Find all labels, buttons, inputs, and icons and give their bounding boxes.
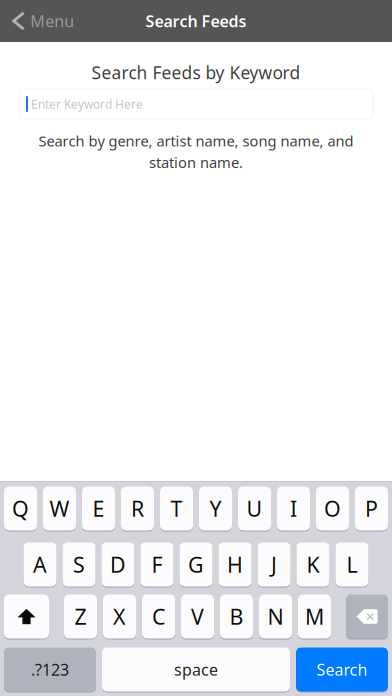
staticText: Q: [12, 494, 29, 523]
staticText: N: [267, 602, 283, 631]
staticText: C: [152, 602, 165, 631]
staticText: B: [229, 602, 243, 631]
button[interactable]: P: [355, 486, 388, 531]
staticText: F: [151, 550, 162, 579]
staticText: A: [33, 550, 47, 579]
staticText: L: [346, 550, 357, 579]
button[interactable]: Z: [64, 594, 97, 639]
staticText: M: [305, 602, 324, 631]
button[interactable]: C: [142, 594, 175, 639]
staticText: station name.: [149, 152, 243, 172]
staticText: V: [191, 602, 204, 631]
button[interactable]: U: [238, 486, 271, 531]
button[interactable]: Menu: [0, 0, 84, 42]
button[interactable]: Q: [4, 486, 37, 531]
button[interactable]: Search: [296, 647, 388, 692]
button[interactable]: W: [43, 486, 76, 531]
staticText: R: [131, 494, 144, 523]
button[interactable]: X: [103, 594, 136, 639]
button[interactable]: O: [316, 486, 349, 531]
button[interactable]: H: [218, 542, 251, 587]
staticText: H: [227, 550, 243, 579]
staticText: Enter Keyword Here: [31, 96, 143, 112]
button[interactable]: M: [298, 594, 331, 639]
staticText: K: [306, 550, 319, 579]
staticText: X: [113, 602, 126, 631]
button[interactable]: N: [259, 594, 292, 639]
staticText: Y: [209, 494, 221, 523]
button[interactable]: I: [277, 486, 310, 531]
staticText: D: [110, 550, 126, 579]
button[interactable]: F: [140, 542, 173, 587]
button[interactable]: D: [101, 542, 134, 587]
button[interactable]: A: [23, 542, 56, 587]
staticText: U: [246, 494, 262, 523]
button[interactable]: G: [179, 542, 212, 587]
button[interactable]: Delete: [346, 594, 388, 639]
button[interactable]: B: [220, 594, 253, 639]
staticText: Search Feeds: [145, 10, 246, 32]
staticText: Z: [74, 602, 86, 631]
button[interactable]: .?123: [4, 647, 96, 692]
button[interactable]: S: [62, 542, 95, 587]
staticText: O: [324, 494, 341, 523]
button[interactable]: L: [335, 542, 368, 587]
staticText: Search: [316, 659, 367, 680]
button[interactable]: V: [181, 594, 214, 639]
staticText: I: [290, 494, 297, 523]
button[interactable]: T: [160, 486, 193, 531]
button[interactable]: Shift: [4, 594, 49, 639]
button[interactable]: Enter Keyword Here: [19, 89, 373, 119]
staticText: .?123: [31, 659, 69, 680]
staticText: W: [49, 494, 69, 523]
button[interactable]: K: [296, 542, 329, 587]
staticText: P: [365, 494, 378, 523]
staticText: T: [170, 494, 182, 523]
staticText: S: [73, 550, 85, 579]
button[interactable]: R: [121, 486, 154, 531]
staticText: space: [174, 659, 218, 680]
button[interactable]: Y: [199, 486, 232, 531]
button[interactable]: space: [102, 647, 290, 692]
staticText: G: [188, 550, 204, 579]
button[interactable]: E: [82, 486, 115, 531]
staticText: Search Feeds by Keyword: [91, 61, 300, 84]
staticText: Menu: [30, 10, 74, 32]
button[interactable]: J: [257, 542, 290, 587]
staticText: E: [92, 494, 104, 523]
staticText: J: [271, 550, 277, 579]
staticText: Search by genre, artist name, song name,…: [38, 131, 353, 150]
